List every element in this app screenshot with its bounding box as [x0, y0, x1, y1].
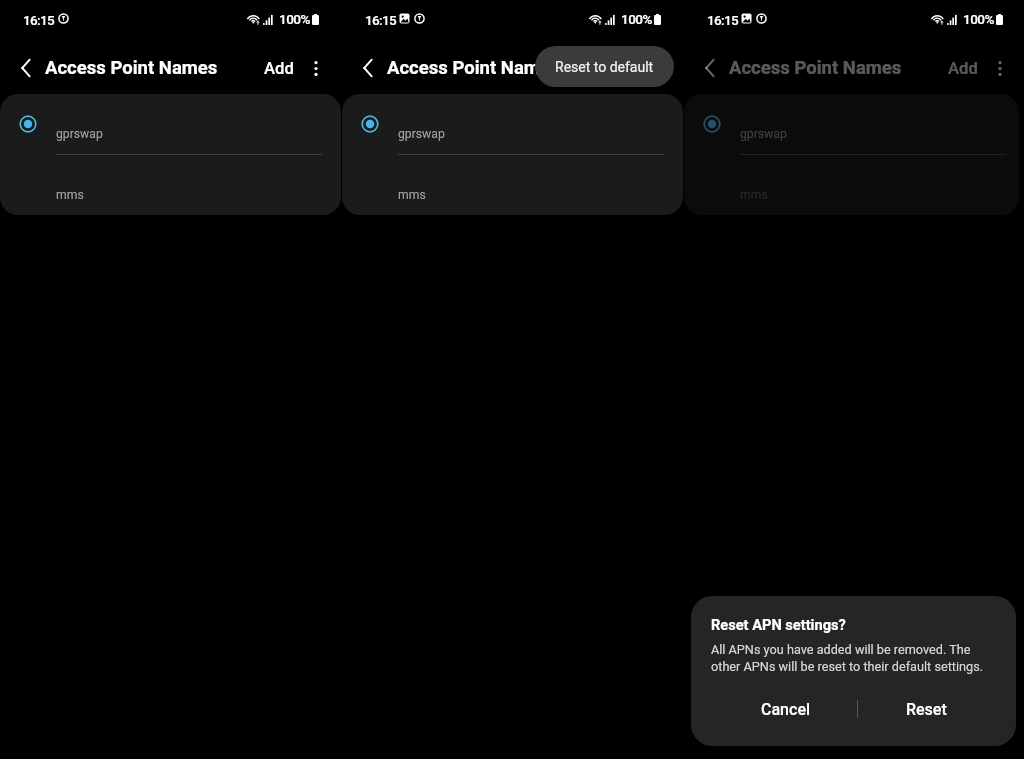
- button[interactable]: gprswap access point, selected: [342, 94, 683, 155]
- button[interactable]: Reset to default: [535, 46, 674, 87]
- button[interactable]: More options: [984, 52, 1016, 84]
- staticText: Add: [264, 59, 294, 78]
- button[interactable]: mms: [0, 155, 341, 215]
- staticText: Access Point Names: [45, 57, 218, 79]
- button[interactable]: Navigate up: [8, 50, 44, 86]
- staticText: Reset APN settings?: [711, 616, 846, 633]
- staticText: Cancel: [761, 700, 811, 719]
- button[interactable]: Navigate up: [350, 50, 386, 86]
- button[interactable]: More options: [300, 52, 332, 84]
- staticText: Reset to default: [555, 59, 654, 75]
- staticText: 16:15: [23, 12, 55, 28]
- button[interactable]: Reset: [858, 684, 1016, 734]
- staticText: gprswap: [740, 127, 787, 141]
- staticText: Access Point Names: [387, 57, 560, 79]
- staticText: Access Point Names: [729, 57, 902, 79]
- staticText: All APNs you have added will be removed.…: [711, 642, 984, 674]
- button[interactable]: Navigate up: [692, 50, 728, 86]
- staticText: 100%: [963, 11, 994, 27]
- staticText: 100%: [279, 11, 310, 27]
- staticText: mms: [740, 188, 768, 202]
- button[interactable]: Add: [948, 59, 978, 78]
- staticText: 16:15: [365, 12, 397, 28]
- button[interactable]: mms: [342, 155, 683, 215]
- staticText: gprswap: [56, 127, 103, 141]
- button[interactable]: Add: [264, 59, 294, 78]
- button[interactable]: Add: [606, 59, 636, 78]
- staticText: 100%: [621, 11, 652, 27]
- staticText: Add: [606, 59, 636, 78]
- button[interactable]: gprswap access point, selected: [684, 94, 1019, 155]
- staticText: mms: [56, 188, 84, 202]
- button[interactable]: Cancel: [691, 684, 857, 734]
- staticText: mms: [398, 188, 426, 202]
- staticText: Reset: [906, 700, 947, 719]
- staticText: gprswap: [398, 127, 445, 141]
- button[interactable]: gprswap access point, selected: [0, 94, 341, 155]
- staticText: 16:15: [707, 12, 739, 28]
- button[interactable]: More options: [642, 52, 674, 84]
- staticText: Add: [948, 59, 978, 78]
